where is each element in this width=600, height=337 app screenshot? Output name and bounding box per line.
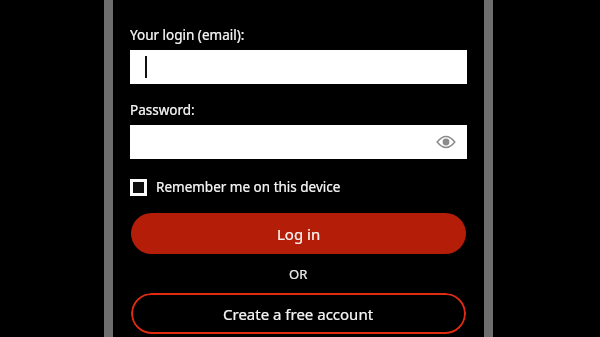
- staticText: Password:: [130, 101, 195, 119]
- button[interactable]: Create a free account: [131, 293, 466, 334]
- button[interactable]: Remember me on this device: [130, 178, 341, 196]
- button[interactable]: Log in: [131, 213, 466, 254]
- staticText: Log in: [277, 224, 321, 244]
- staticText: OR: [289, 265, 308, 283]
- button[interactable]: Show password: [431, 127, 461, 157]
- staticText: Your login (email):: [130, 26, 245, 44]
- button[interactable]: [130, 50, 467, 84]
- staticText: Create a free account: [223, 304, 374, 324]
- staticText: Remember me on this device: [156, 178, 341, 196]
- button[interactable]: Show password: [130, 125, 467, 159]
